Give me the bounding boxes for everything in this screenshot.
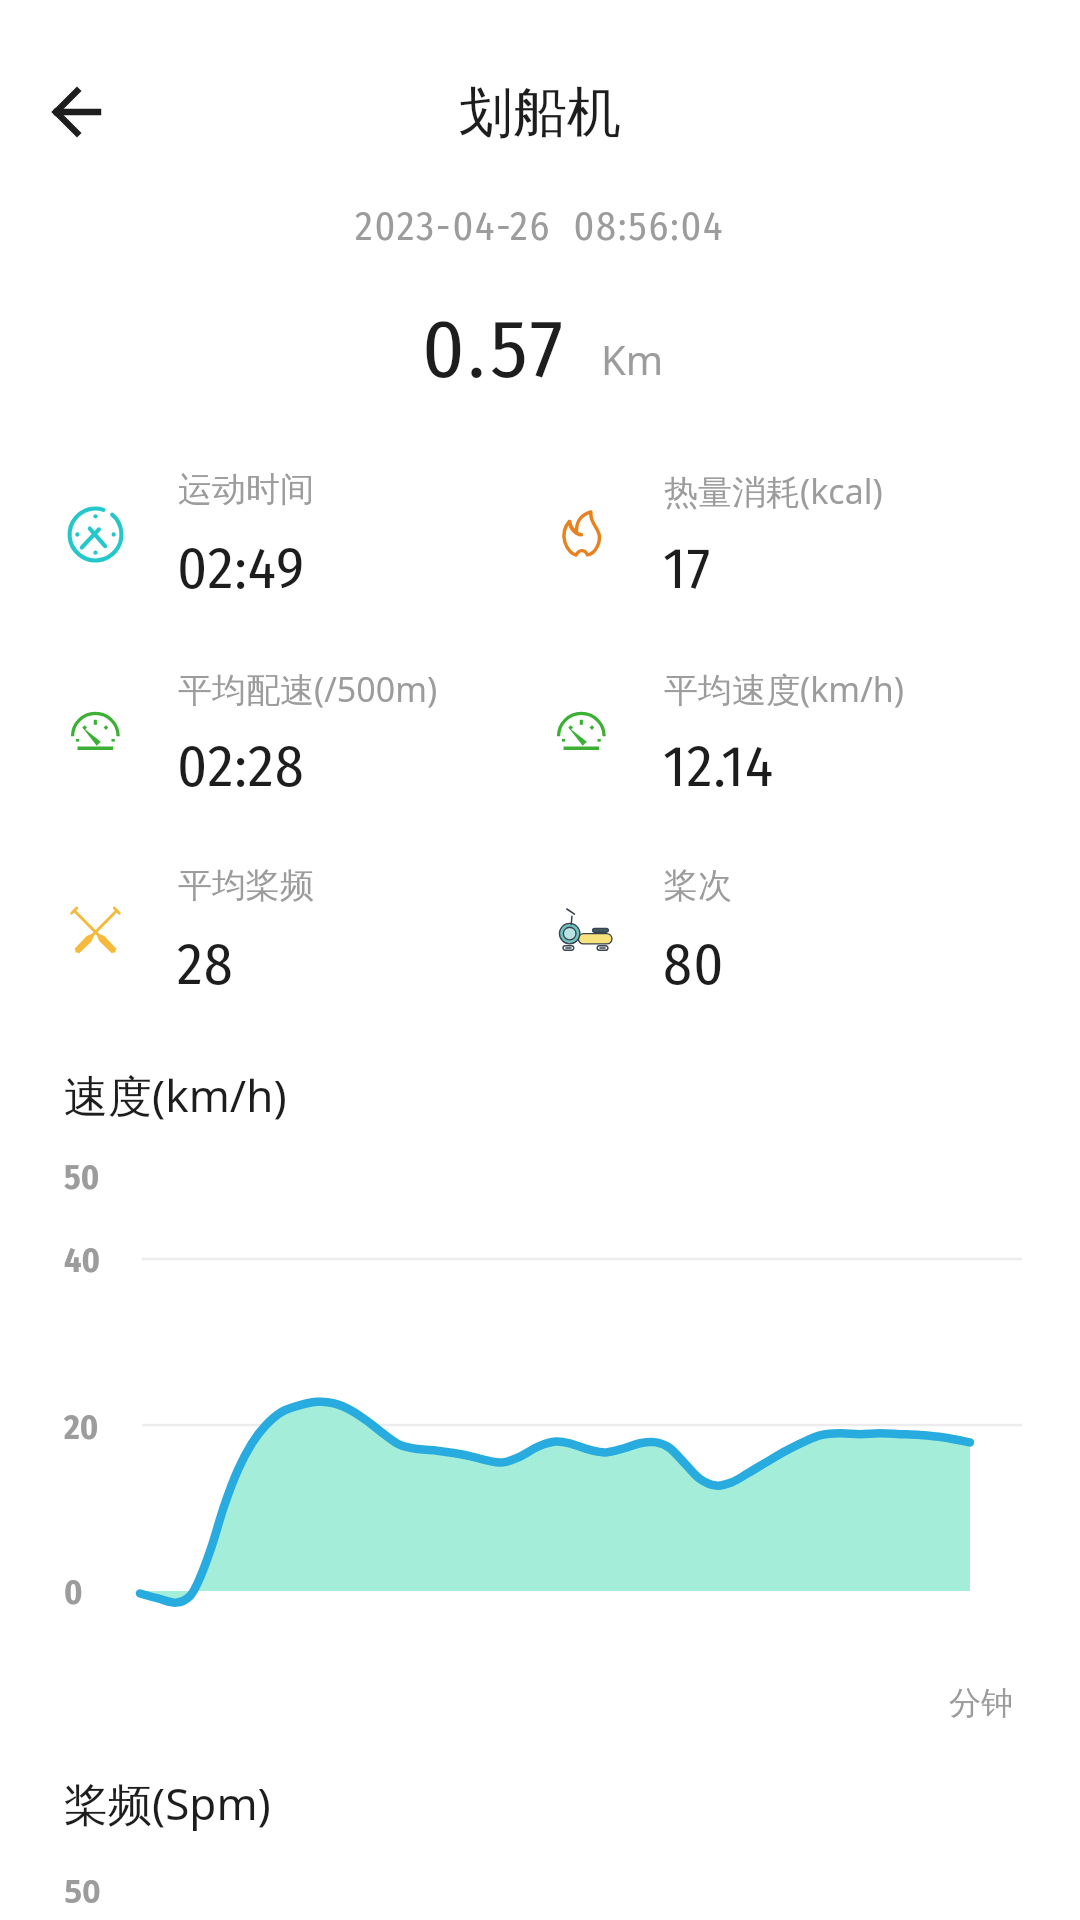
staticText: Km: [601, 332, 664, 386]
staticText: 热量消耗(kcal): [664, 468, 883, 514]
button[interactable]: 桨次: [552, 848, 1022, 1023]
staticText: 0.57: [422, 300, 568, 398]
staticText: 桨频(Spm): [64, 1773, 271, 1833]
staticText: 40: [64, 1240, 101, 1281]
staticText: 28: [177, 930, 234, 1000]
staticText: 划船机: [459, 79, 621, 147]
button[interactable]: 热量消耗(kcal): [552, 452, 1022, 627]
button[interactable]: 平均速度(km/h): [552, 650, 1022, 825]
button[interactable]: 平均桨频: [66, 848, 536, 1023]
staticText: 12.14: [663, 732, 775, 802]
staticText: 桨次: [664, 864, 732, 907]
staticText: 17: [663, 534, 712, 604]
staticText: 运动时间: [178, 468, 314, 511]
staticText: 0: [64, 1572, 83, 1613]
staticText: 80: [663, 930, 725, 1000]
button[interactable]: 平均配速(/500m): [66, 650, 536, 825]
staticText: 20: [64, 1407, 99, 1448]
staticText: 2023-04-26 08:56:04: [355, 203, 725, 251]
staticText: 50: [64, 1157, 100, 1198]
staticText: 02:28: [177, 732, 306, 802]
staticText: 平均速度(km/h): [664, 666, 905, 712]
button[interactable]: Back: [30, 67, 120, 157]
staticText: 平均桨频: [178, 864, 314, 907]
staticText: 02:49: [177, 534, 306, 604]
staticText: 速度(km/h): [64, 1065, 287, 1125]
staticText: 分钟: [949, 1683, 1013, 1723]
staticText: 50: [64, 1869, 101, 1913]
staticText: 平均配速(/500m): [178, 666, 438, 712]
button[interactable]: 运动时间: [66, 452, 536, 627]
